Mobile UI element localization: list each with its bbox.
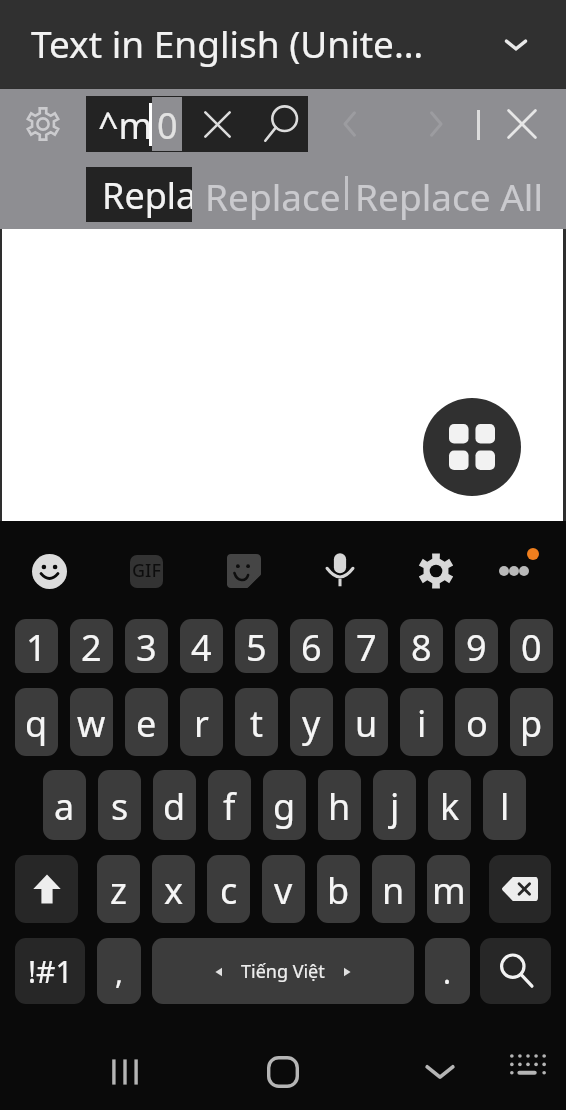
button[interactable]: Repla: [86, 167, 192, 222]
button[interactable]: Replace All: [351, 167, 547, 222]
button[interactable]: 6: [290, 619, 333, 673]
button[interactable]: 5: [235, 619, 278, 673]
staticText: 0: [521, 623, 542, 672]
staticText: Replace All: [355, 171, 543, 221]
button[interactable]: Change keyboard: [502, 1046, 554, 1098]
button[interactable]: Backspace: [489, 855, 551, 923]
staticText: d: [163, 782, 186, 831]
staticText: n: [382, 866, 405, 915]
staticText: j: [390, 782, 400, 831]
staticText: w: [77, 699, 106, 748]
button[interactable]: Stickers: [227, 554, 261, 588]
button[interactable]: Text in English (Unite…: [0, 0, 566, 88]
staticText: h: [328, 782, 351, 831]
staticText: Tiếng Việt: [241, 959, 325, 984]
staticText: 4: [191, 623, 212, 672]
button[interactable]: p: [510, 688, 553, 756]
button[interactable]: Search: [256, 96, 308, 152]
button[interactable]: Home: [257, 1046, 309, 1098]
button[interactable]: Search: [480, 938, 551, 1004]
button[interactable]: !#1: [15, 938, 85, 1004]
button[interactable]: u: [345, 688, 388, 756]
button[interactable]: Expand title: [489, 18, 543, 72]
button[interactable]: v: [262, 855, 305, 923]
button[interactable]: b: [317, 855, 360, 923]
button[interactable]: k: [428, 770, 471, 840]
button[interactable]: q: [15, 688, 58, 756]
button[interactable]: Recents: [99, 1046, 151, 1098]
staticText: 5: [246, 623, 267, 672]
staticText: o: [466, 699, 488, 748]
staticText: s: [111, 782, 129, 831]
staticText: .: [443, 952, 452, 993]
button[interactable]: 9: [455, 619, 498, 673]
staticText: r: [194, 699, 209, 748]
staticText: 0: [157, 101, 178, 150]
button[interactable]: 0: [510, 619, 553, 673]
button[interactable]: j: [373, 770, 416, 840]
button[interactable]: 7: [345, 619, 388, 673]
button[interactable]: a: [43, 770, 86, 840]
staticText: a: [54, 782, 75, 831]
staticText: y: [302, 699, 321, 748]
button[interactable]: .: [425, 938, 470, 1004]
staticText: z: [110, 866, 127, 915]
button[interactable]: 8: [400, 619, 443, 673]
button[interactable]: z: [97, 855, 140, 923]
button[interactable]: r: [180, 688, 223, 756]
button[interactable]: d: [153, 770, 196, 840]
button[interactable]: c: [207, 855, 250, 923]
button[interactable]: Emoji: [32, 554, 67, 589]
button[interactable]: g: [263, 770, 306, 840]
button[interactable]: Hide keyboard: [414, 1046, 466, 1098]
staticText: Replace: [205, 171, 341, 221]
button[interactable]: m: [427, 855, 470, 923]
staticText: x: [164, 866, 184, 915]
button[interactable]: 2: [70, 619, 113, 673]
staticText: 3: [136, 623, 157, 672]
button[interactable]: GIF: [130, 555, 163, 588]
staticText: ^m: [98, 101, 153, 150]
button[interactable]: l: [483, 770, 526, 840]
button[interactable]: Voice input: [322, 551, 358, 587]
button[interactable]: i: [400, 688, 443, 756]
staticText: q: [25, 699, 48, 748]
button[interactable]: w: [70, 688, 113, 756]
button[interactable]: s: [98, 770, 141, 840]
staticText: Text in English (Unite…: [31, 18, 424, 68]
button[interactable]: Shift: [15, 855, 78, 923]
button[interactable]: 4: [180, 619, 223, 673]
button[interactable]: h: [318, 770, 361, 840]
staticText: t: [250, 699, 263, 748]
button[interactable]: o: [455, 688, 498, 756]
button[interactable]: y: [290, 688, 333, 756]
button[interactable]: More options: [496, 546, 542, 592]
button[interactable]: 1: [15, 619, 58, 673]
button[interactable]: t: [235, 688, 278, 756]
staticText: v: [274, 866, 293, 915]
staticText: !#1: [28, 951, 73, 992]
button[interactable]: Language: Tiếng Việt: [152, 938, 414, 1004]
button[interactable]: Keyboard settings: [418, 553, 454, 589]
button[interactable]: Search options: [16, 97, 70, 151]
button[interactable]: f: [208, 770, 251, 840]
button[interactable]: n: [372, 855, 415, 923]
button[interactable]: Clear search: [191, 96, 243, 152]
staticText: ,: [115, 952, 124, 993]
button[interactable]: x: [152, 855, 195, 923]
staticText: Repla: [102, 171, 192, 220]
button[interactable]: Apps: [423, 398, 521, 496]
button[interactable]: Replace: [200, 167, 346, 222]
staticText: 2: [81, 623, 102, 672]
button[interactable]: 3: [125, 619, 168, 673]
button[interactable]: ,: [97, 938, 141, 1004]
button[interactable]: e: [125, 688, 168, 756]
staticText: 9: [466, 623, 487, 672]
staticText: m: [432, 866, 466, 915]
button[interactable]: Close find bar: [494, 96, 550, 152]
staticText: 1: [26, 623, 47, 672]
staticText: l: [500, 782, 510, 831]
button[interactable]: ^m: [86, 96, 308, 152]
